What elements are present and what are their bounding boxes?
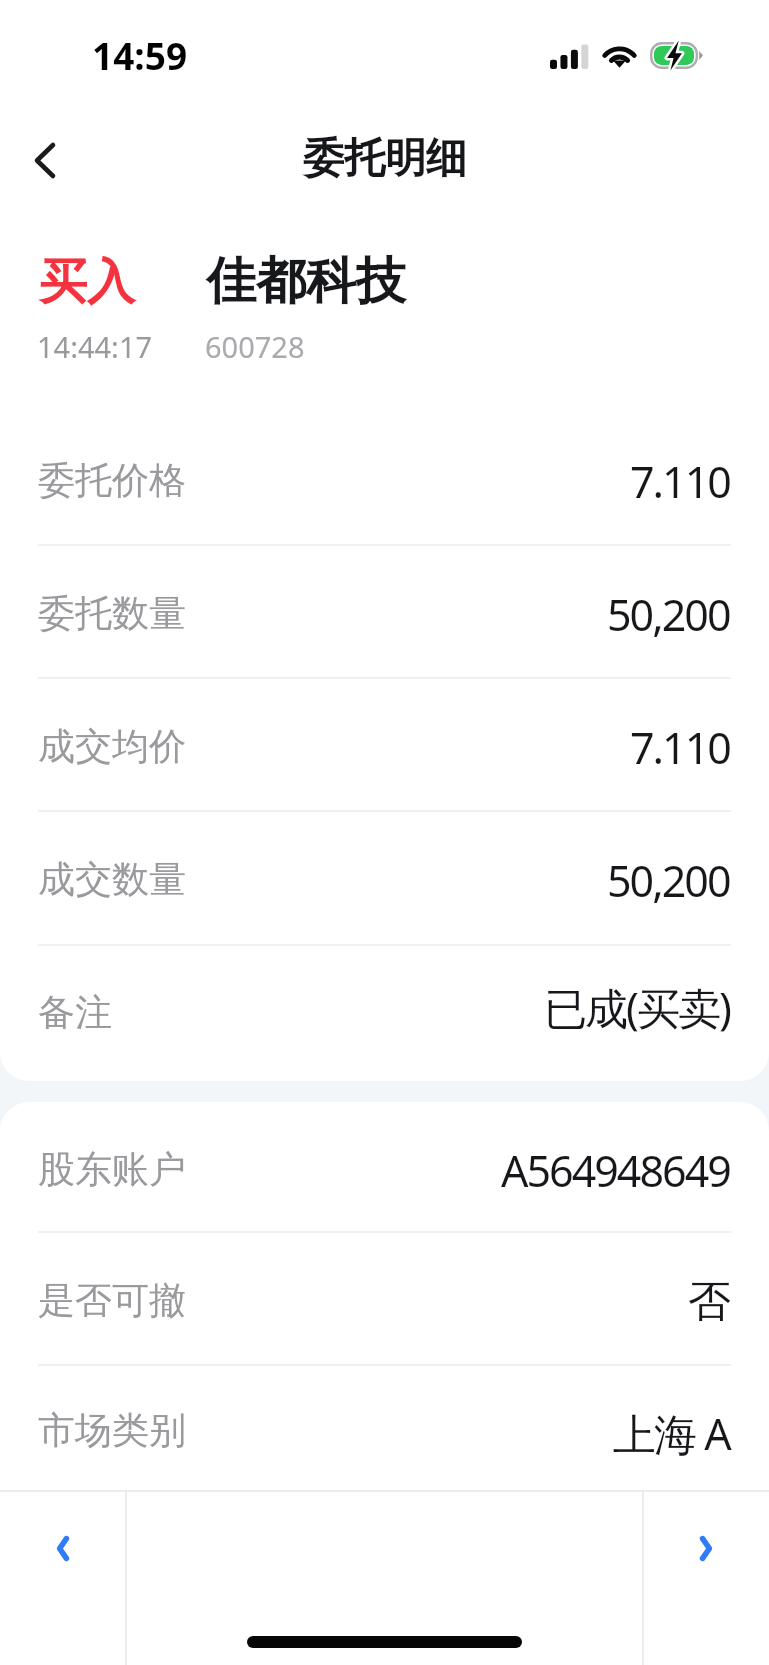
staticText: 佳都科技	[206, 250, 406, 313]
staticText: 是否可撤	[38, 1277, 186, 1324]
button[interactable]: Back	[12, 114, 76, 206]
button[interactable]: Next order	[644, 1490, 769, 1665]
button[interactable]: 成交均价	[0, 678, 769, 811]
staticText: 已成(买卖)	[544, 978, 730, 1037]
button[interactable]: 备注	[0, 944, 769, 1077]
staticText: 14:59	[92, 30, 188, 80]
staticText: 市场类别	[38, 1407, 186, 1454]
button[interactable]: 是否可撤	[0, 1232, 769, 1365]
staticText: 备注	[38, 989, 112, 1036]
button[interactable]: Previous order	[0, 1490, 125, 1665]
staticText: 否	[689, 1275, 730, 1329]
staticText: 委托明细	[303, 133, 467, 185]
staticText: 成交数量	[38, 856, 186, 903]
staticText: A564948649	[501, 1141, 730, 1200]
button[interactable]: 委托价格	[0, 412, 769, 545]
staticText: 600728	[205, 327, 305, 366]
button[interactable]: 市场类别	[0, 1365, 769, 1491]
staticText: 7.110	[630, 718, 730, 777]
staticText: 50,200	[607, 851, 730, 910]
button[interactable]: 委托数量	[0, 545, 769, 678]
staticText: 买入	[39, 252, 135, 312]
staticText: 14:44:17	[37, 327, 153, 366]
staticText: 委托价格	[38, 457, 186, 504]
staticText: 委托数量	[38, 590, 186, 637]
staticText: 上海 A	[613, 1404, 730, 1463]
staticText: 7.110	[630, 452, 730, 511]
staticText: 股东账户	[38, 1146, 186, 1193]
staticText: 50,200	[607, 585, 730, 644]
staticText: 成交均价	[38, 723, 186, 770]
button[interactable]: 成交数量	[0, 811, 769, 944]
button[interactable]: 股东账户	[0, 1102, 769, 1232]
